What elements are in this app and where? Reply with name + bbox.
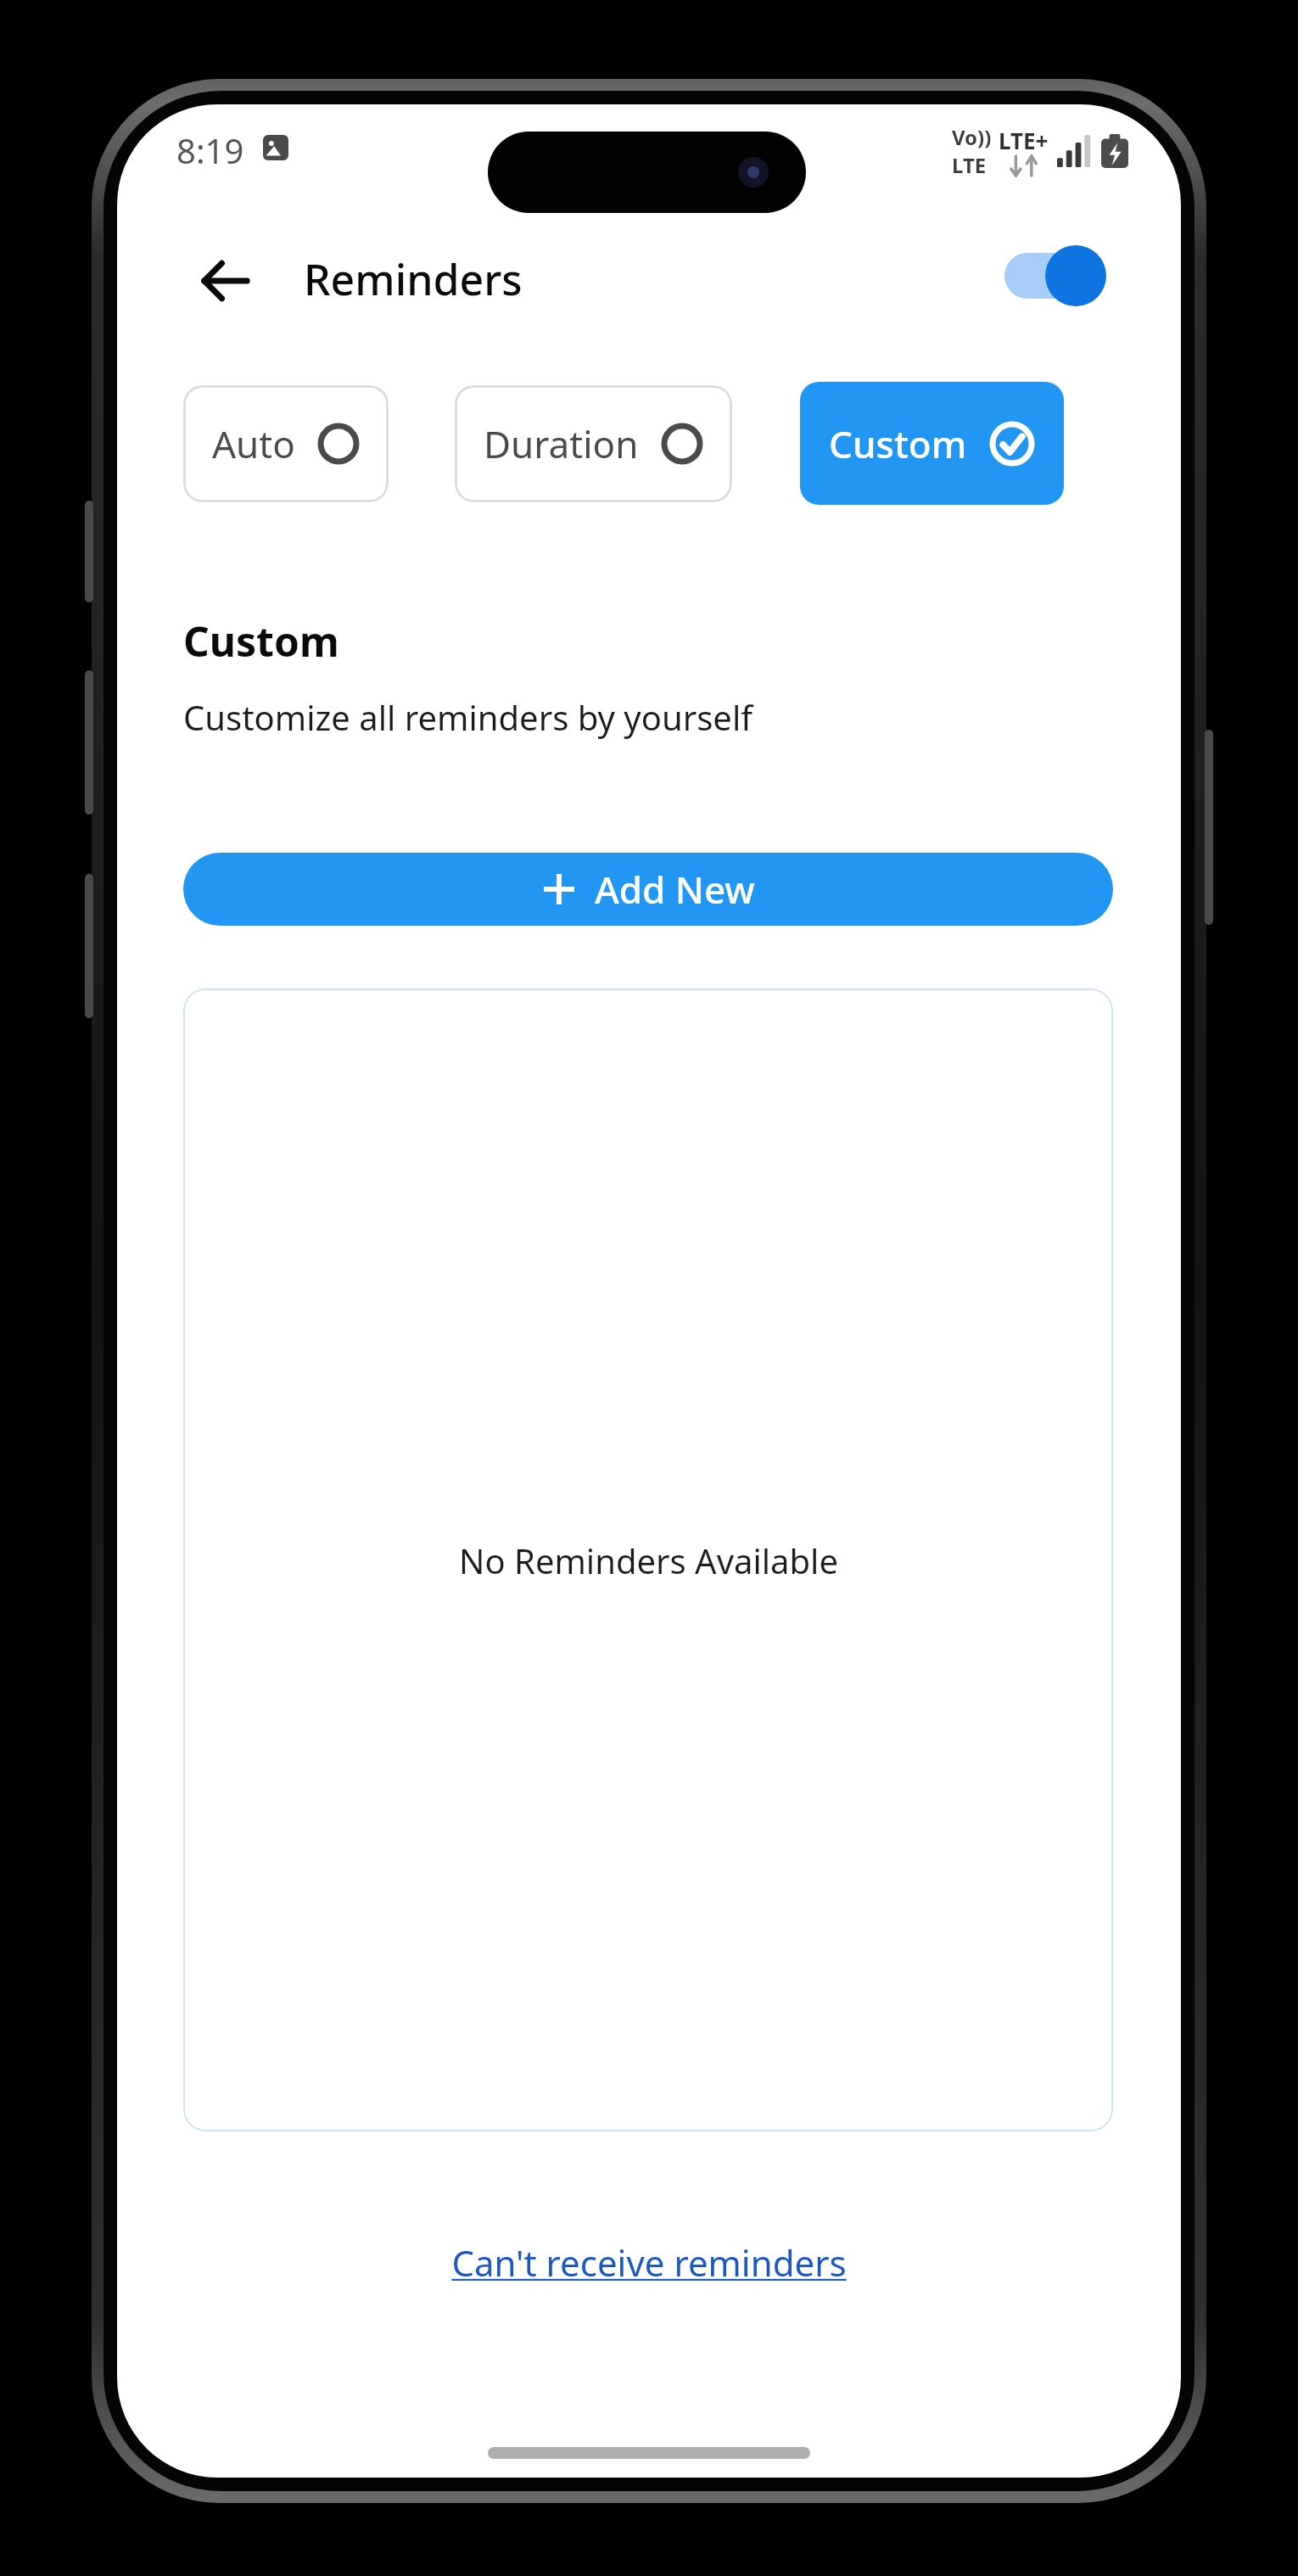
staticText: Duration (484, 418, 639, 469)
staticText: Can't receive reminders (451, 2238, 847, 2287)
button[interactable]: Reminders enabled (1001, 242, 1111, 310)
staticText: LTE+ (999, 126, 1049, 155)
staticText: Auto (212, 418, 295, 469)
staticText: 8:19 (176, 127, 244, 173)
staticText: Customize all reminders by yourself (183, 694, 753, 740)
staticText: Vo)) (952, 123, 992, 151)
button[interactable]: Add New (183, 853, 1113, 926)
staticText: No Reminders Available (459, 1537, 838, 1583)
button[interactable]: Back (185, 240, 266, 322)
staticText: Reminders (304, 250, 523, 308)
button[interactable]: Custom (800, 382, 1064, 505)
staticText: Custom (829, 418, 967, 469)
button[interactable]: Duration (455, 385, 732, 502)
button[interactable]: Can't receive reminders (438, 2230, 860, 2295)
staticText: LTE (952, 151, 987, 179)
staticText: Add New (595, 864, 755, 915)
button[interactable]: Auto (183, 385, 389, 502)
staticText: Custom (183, 613, 339, 669)
